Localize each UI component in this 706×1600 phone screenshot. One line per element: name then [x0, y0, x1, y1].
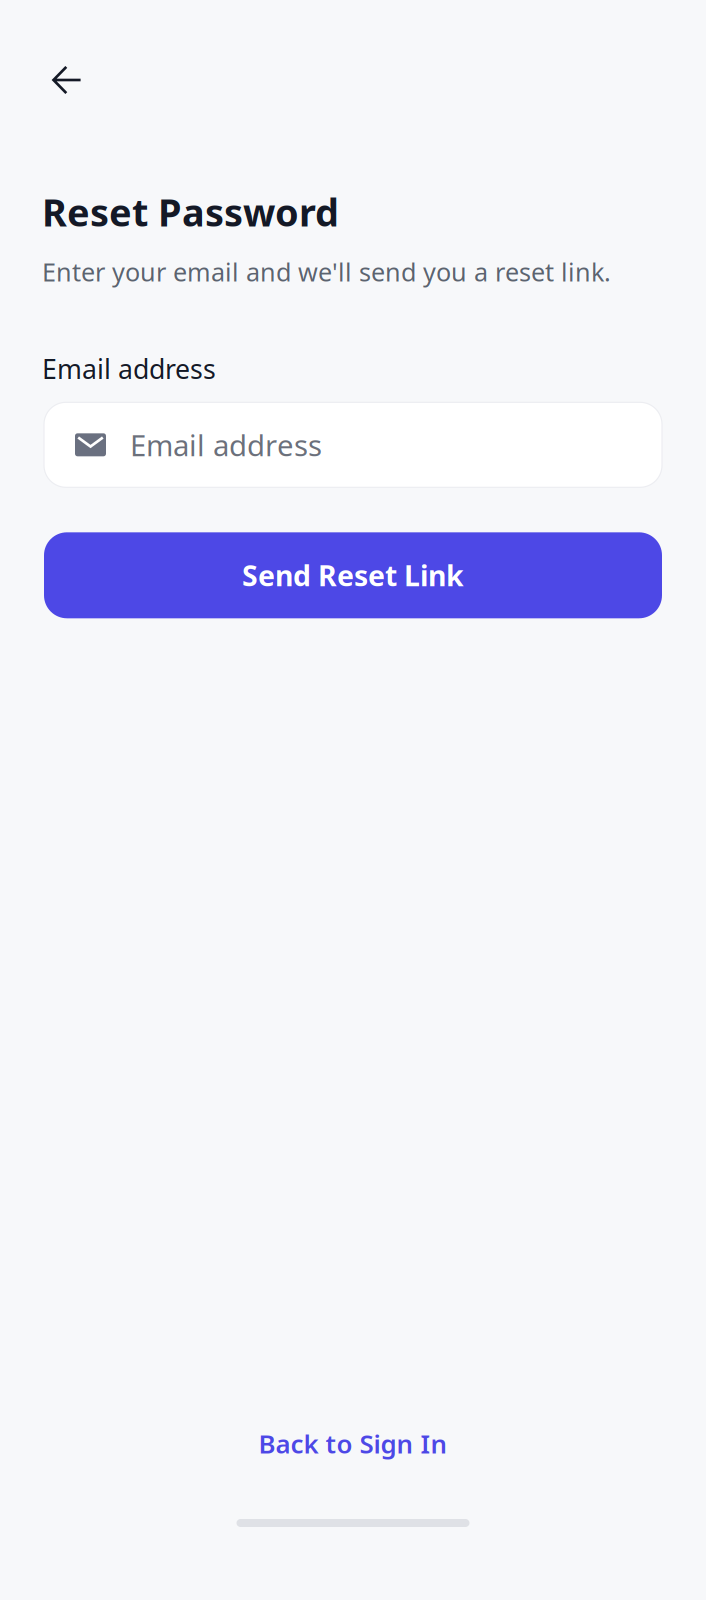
staticText: Send Reset Link	[242, 556, 464, 595]
staticText: Back to Sign In	[258, 1426, 447, 1461]
staticText: Reset Password	[42, 186, 339, 238]
button[interactable]: Back to Sign In	[246, 1418, 459, 1469]
button[interactable]: Back	[45, 58, 89, 102]
staticText: Enter your email and we'll send you a re…	[42, 255, 611, 289]
button[interactable]: Email address	[44, 402, 662, 487]
staticText: Email address	[130, 425, 322, 464]
staticText: Email address	[42, 351, 216, 386]
button[interactable]: Send Reset Link	[44, 532, 662, 618]
